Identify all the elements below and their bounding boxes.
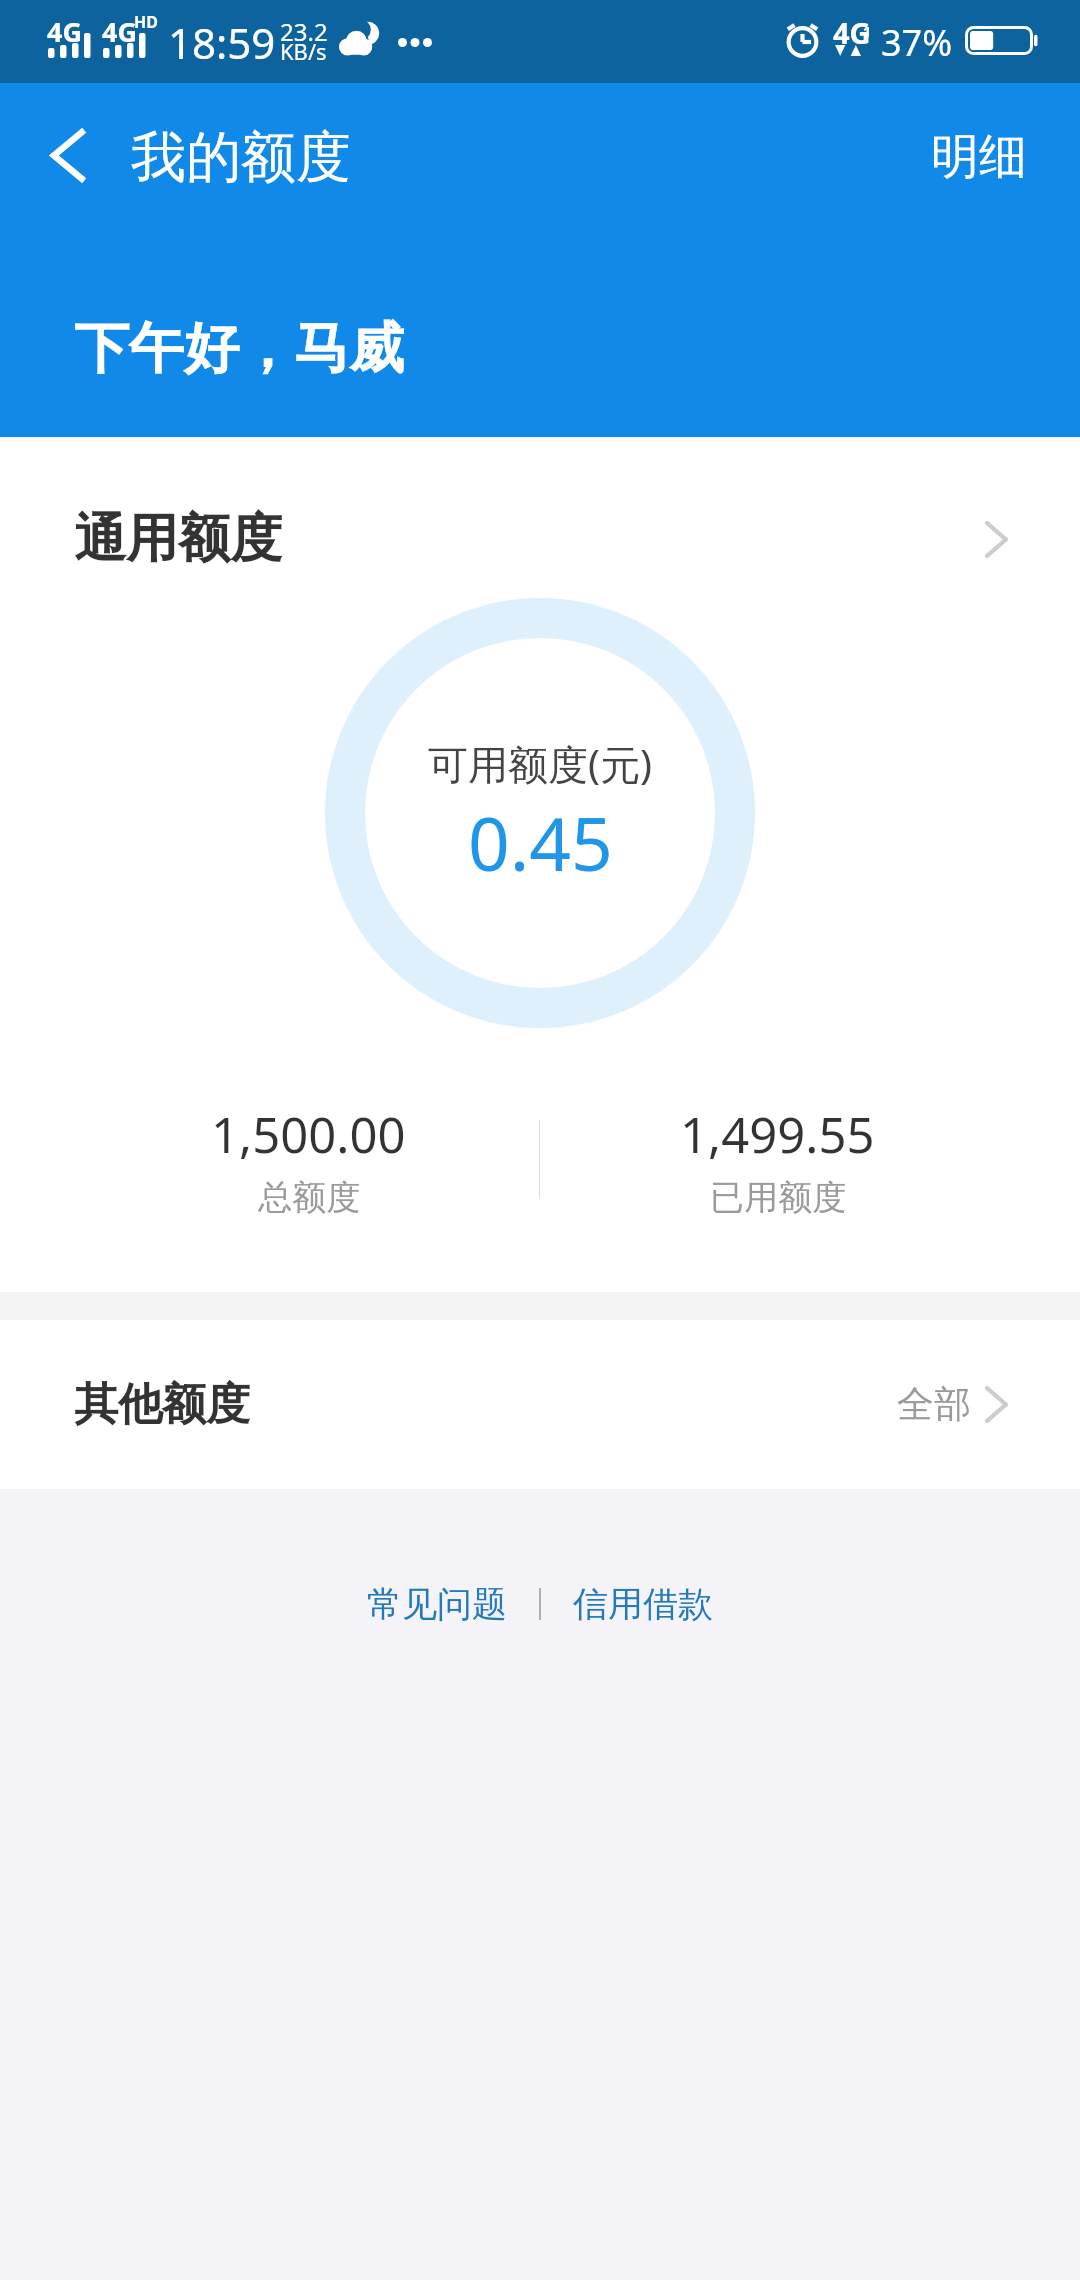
button[interactable]: Back bbox=[11, 99, 123, 211]
staticText: 通用额度 bbox=[74, 506, 282, 572]
staticText: 我的额度 bbox=[131, 123, 351, 192]
staticText: KB/s bbox=[280, 36, 327, 66]
staticText: 下午好，马威 bbox=[74, 314, 404, 383]
button[interactable]: 明细 bbox=[880, 101, 1052, 213]
staticText: 4G bbox=[47, 13, 82, 50]
staticText: 信用借款 bbox=[573, 1582, 713, 1626]
button[interactable]: 通用额度 bbox=[0, 437, 1080, 641]
staticText: 37% bbox=[881, 18, 953, 67]
staticText: 23.2 bbox=[280, 15, 328, 48]
staticText: 全部 bbox=[897, 1381, 971, 1428]
staticText: 总额度 bbox=[258, 1176, 360, 1219]
staticText: 1,499.55 bbox=[680, 1101, 875, 1168]
button[interactable]: 常见问题 bbox=[353, 1570, 521, 1638]
staticText: 4G bbox=[833, 13, 871, 52]
staticText: 1,500.00 bbox=[211, 1101, 406, 1168]
staticText: 常见问题 bbox=[367, 1582, 507, 1626]
staticText: HD bbox=[134, 11, 158, 33]
button[interactable]: 信用借款 bbox=[559, 1570, 727, 1638]
button[interactable]: 其他额度 bbox=[0, 1320, 1080, 1489]
staticText: 0.45 bbox=[468, 793, 613, 892]
staticText: 4G bbox=[102, 13, 137, 50]
staticText: 其他额度 bbox=[74, 1377, 250, 1432]
staticText: 可用额度(元) bbox=[428, 736, 652, 791]
staticText: 已用额度 bbox=[710, 1176, 846, 1219]
staticText: 1 bbox=[863, 22, 872, 41]
staticText: 明细 bbox=[931, 127, 1027, 187]
staticText: 18:59 bbox=[168, 14, 276, 71]
